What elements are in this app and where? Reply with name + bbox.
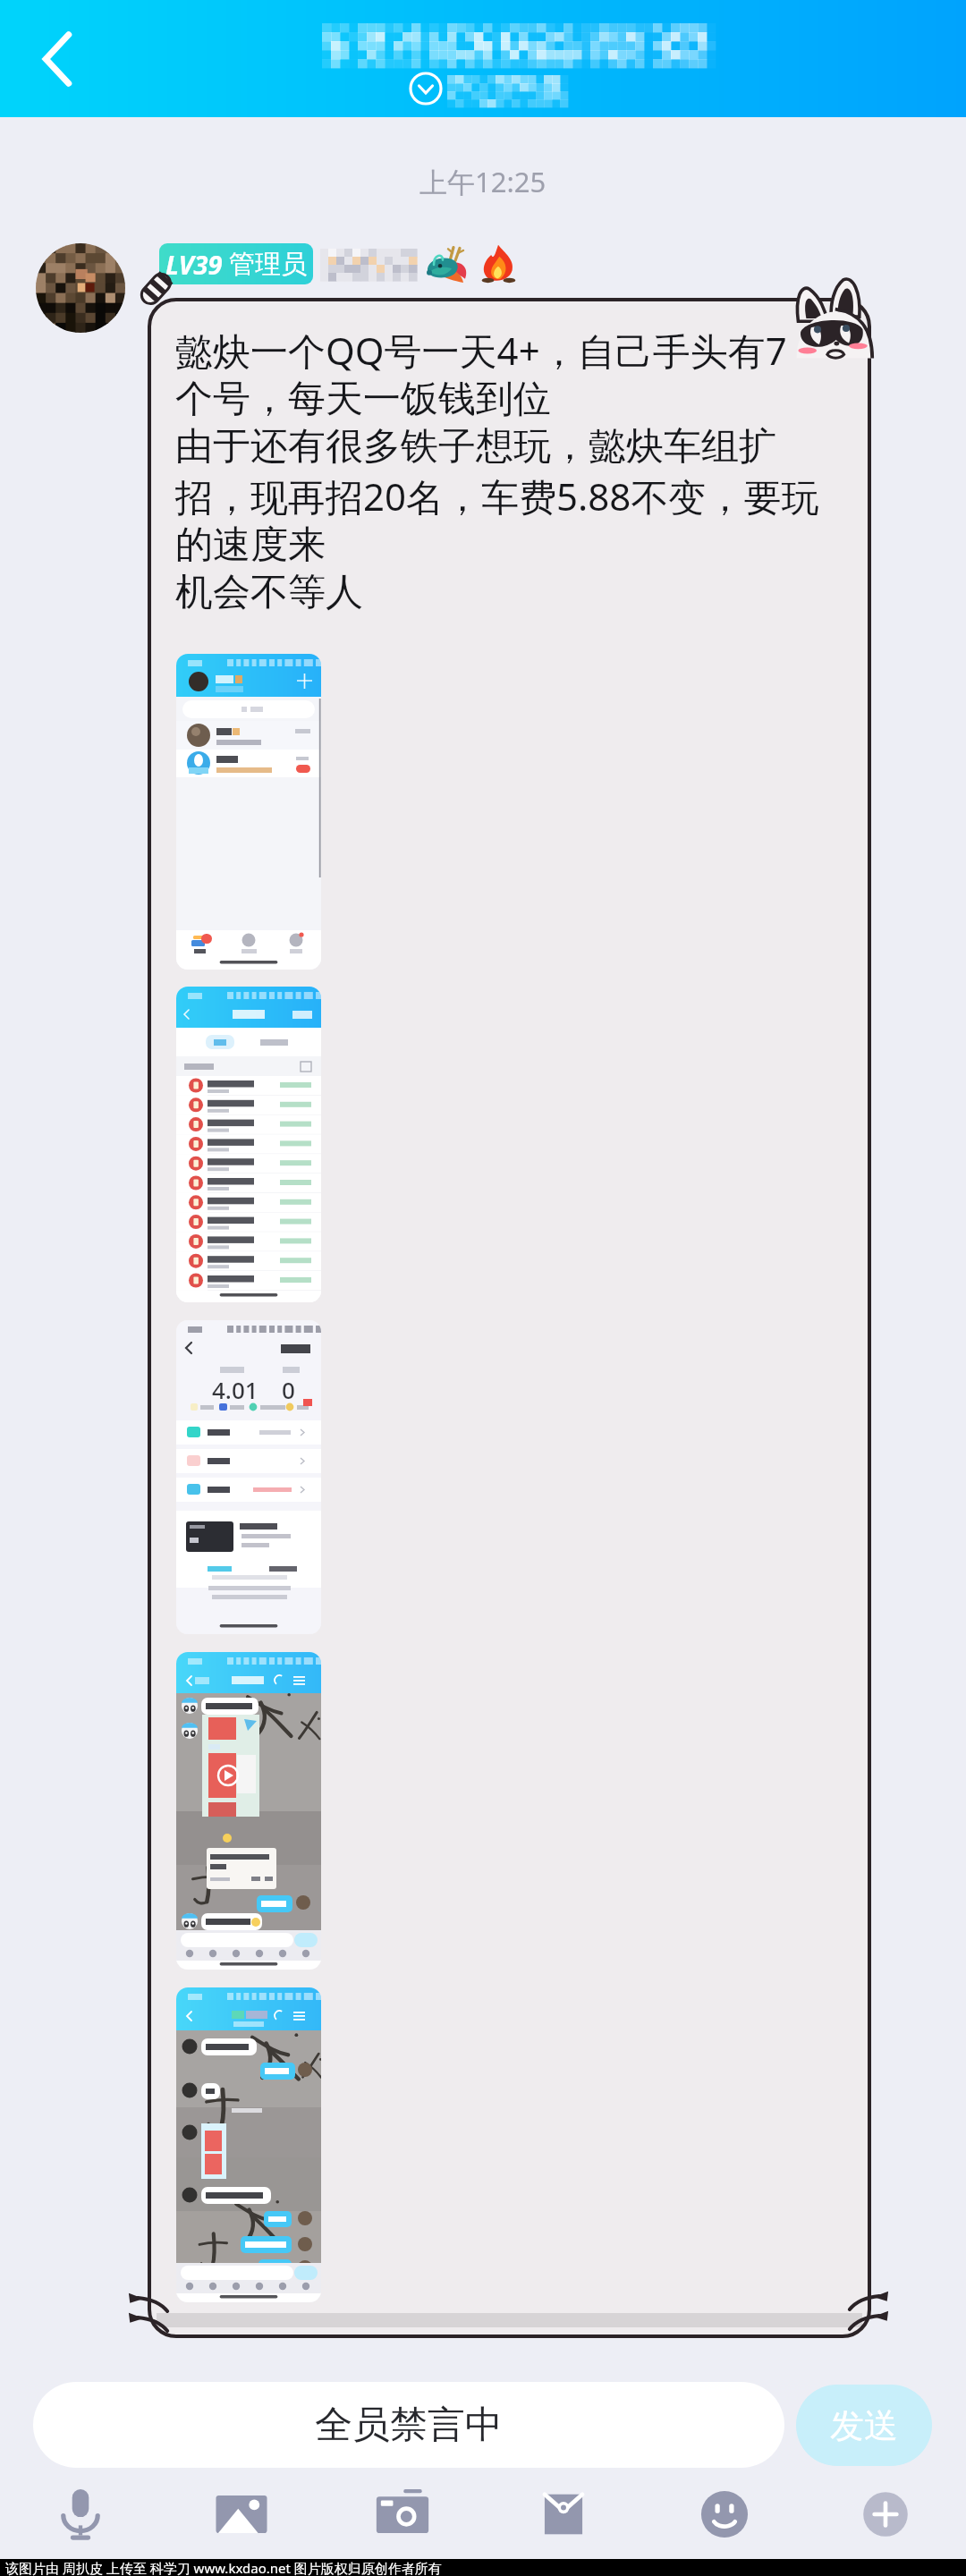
staticText: 4.01 (212, 1374, 258, 1405)
button[interactable]: Photos (161, 2476, 322, 2553)
staticText: 由于还有很多铁子想玩，懿炔车组扩 (175, 423, 776, 470)
button[interactable]: Screenshot (176, 1320, 321, 1634)
staticText: LV39 (165, 247, 223, 282)
button[interactable]: More (805, 2476, 966, 2553)
staticText: 的速度来 (175, 521, 326, 569)
button[interactable]: Red packet (483, 2476, 644, 2553)
staticText: 机会不等人 (175, 569, 363, 616)
button[interactable]: Screenshot (176, 1987, 321, 2302)
staticText: 招，现再招20名，车费5.88不变，要玩 (175, 470, 819, 521)
button[interactable]: Screenshot (176, 654, 321, 970)
button[interactable]: LV39 (159, 243, 313, 284)
staticText: 个号，每天一饭钱到位 (175, 376, 551, 423)
button[interactable]: Camera (322, 2476, 483, 2553)
button[interactable]: 全员禁言中 (33, 2382, 784, 2468)
button[interactable]: Emoji (644, 2476, 805, 2553)
staticText: 发送 (830, 2404, 898, 2447)
button[interactable]: Screenshot (176, 987, 321, 1302)
staticText: 全员禁言中 (315, 2402, 503, 2449)
staticText: 0 (282, 1374, 295, 1405)
button[interactable]: Avatar (36, 243, 125, 333)
button[interactable]: Voice message (0, 2476, 161, 2553)
staticText: 管理员 (229, 248, 307, 281)
staticText: 上午12:25 (419, 163, 547, 200)
button[interactable]: Back (13, 14, 102, 104)
button[interactable]: 发送 (796, 2385, 932, 2466)
button[interactable]: Screenshot (176, 1652, 321, 1970)
staticText: 该图片由 周扒皮 上传至 科学刀 www.kxdao.net 图片版权归原创作者… (5, 2559, 442, 2576)
staticText: 懿炔一个QQ号一天4+，自己手头有7 (175, 325, 787, 376)
